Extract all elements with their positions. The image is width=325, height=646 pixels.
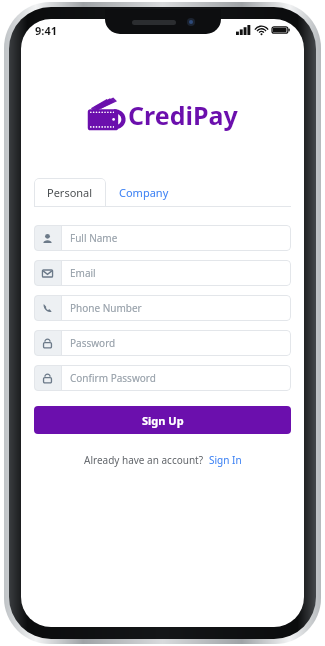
button[interactable]: Sign Up: [34, 406, 291, 434]
staticText: Email: [70, 266, 96, 280]
button[interactable]: Personal: [34, 178, 106, 207]
staticText: Personal: [47, 185, 93, 200]
button[interactable]: Company: [106, 178, 182, 207]
staticText: Already have an account?: [84, 453, 204, 467]
staticText: Confirm Password: [70, 371, 156, 385]
staticText: Phone Number: [70, 301, 142, 315]
staticText: Company: [119, 185, 169, 200]
staticText: Password: [70, 336, 116, 350]
staticText: Sign Up: [142, 413, 184, 428]
button[interactable]: Full Name: [34, 225, 291, 251]
button[interactable]: Sign In: [209, 453, 242, 467]
staticText: Full Name: [70, 231, 118, 245]
staticText: Sign In: [209, 453, 242, 467]
button[interactable]: Confirm Password: [34, 365, 291, 391]
button[interactable]: Phone Number: [34, 295, 291, 321]
staticText: 9:41: [35, 23, 57, 38]
staticText: CrediPay: [128, 98, 238, 132]
button[interactable]: Email: [34, 260, 291, 286]
button[interactable]: Password: [34, 330, 291, 356]
